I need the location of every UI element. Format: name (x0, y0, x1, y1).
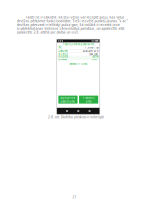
staticText: Tādēļ ne ir sākotnē, kā tevi vēlos var r… (16, 15, 124, 19)
staticText: SIA Lāči (89, 53, 98, 56)
staticText: devīšas pērkamie funkcionalitāte. Tieši … (16, 19, 127, 23)
button[interactable]: Pievienot (79, 96, 98, 104)
staticText: aprakstīts 2.8. attēlā pie darba un sist… (16, 30, 78, 34)
staticText: Kopējā summa (58, 55, 67, 62)
staticText: PS-0147 / 08 (85, 46, 98, 49)
staticText: pasūtījumu (60, 100, 75, 103)
staticText: Datums (58, 49, 67, 53)
staticText: Pievienot (83, 96, 95, 99)
staticText: Pasūtījuma kopsavilkums (63, 43, 94, 46)
staticText: to pārkārtošanas kritiskos sāņvietotāja … (16, 26, 124, 31)
button[interactable]: Apstiprināt (58, 96, 77, 104)
staticText: Klients (58, 53, 67, 56)
staticText: Nr. (58, 46, 62, 49)
staticText: 21 (72, 195, 76, 199)
staticText: 2.8. att. Darbība pārskats ir nobeigtā (48, 115, 104, 119)
staticText: Apstiprināt (60, 96, 75, 99)
staticText: devīšas pārsvarā ir ieliktāji pulsa gan,… (16, 22, 119, 27)
staticText: preci (86, 100, 92, 103)
staticText: Saraksts ir tukšs (69, 62, 87, 65)
staticText: 247,60 EUR (92, 55, 98, 62)
staticText: 14.05.2019 12:15 (82, 49, 98, 53)
